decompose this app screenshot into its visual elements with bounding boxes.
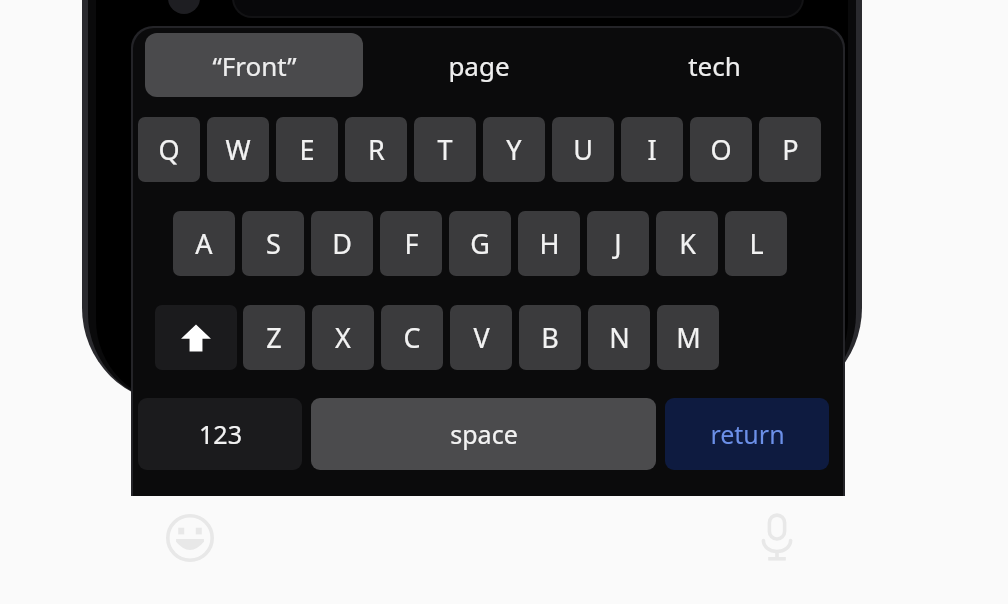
staticText: “Front” [212,48,297,83]
staticText: F [404,225,419,262]
button[interactable]: D [311,211,373,276]
staticText: B [541,319,559,356]
staticText: K [679,225,696,262]
button[interactable]: I [621,117,683,182]
button[interactable]: L [725,211,787,276]
button[interactable]: Emoji keyboard [166,514,214,562]
button[interactable]: 123 [138,398,302,470]
button[interactable]: U [552,117,614,182]
staticText: I [647,131,657,168]
staticText: T [437,131,453,168]
button[interactable]: E [276,117,338,182]
button[interactable]: A [173,211,235,276]
staticText: S [266,225,281,262]
staticText: Y [506,131,522,168]
staticText: page [448,48,510,83]
button[interactable]: G [449,211,511,276]
staticText: P [782,131,799,168]
staticText: 123 [199,417,242,451]
button[interactable]: Voice input [757,512,797,564]
staticText: W [225,131,251,168]
button[interactable]: W [207,117,269,182]
button[interactable]: return [665,398,829,470]
staticText: tech [688,48,741,83]
button[interactable]: F [380,211,442,276]
button[interactable]: Q [138,117,200,182]
staticText: Q [158,131,180,168]
button[interactable]: R [345,117,407,182]
button[interactable]: X [312,305,374,370]
staticText: space [450,417,518,451]
staticText: M [676,319,701,356]
staticText: L [749,225,764,262]
button[interactable]: space [311,398,656,470]
staticText: D [332,225,352,262]
staticText: H [539,225,560,262]
button[interactable]: Shift [155,305,237,370]
staticText: N [609,319,630,356]
button[interactable]: page [393,33,565,97]
button[interactable]: M [657,305,719,370]
button[interactable]: C [381,305,443,370]
staticText: V [473,319,490,356]
staticText: J [614,225,622,262]
staticText: O [710,131,732,168]
staticText: G [470,225,490,262]
button[interactable]: P [759,117,821,182]
staticText: U [573,131,593,168]
button[interactable]: Attach [168,0,200,14]
staticText: E [299,131,315,168]
button[interactable]: “Front” [145,33,363,97]
button[interactable]: T [414,117,476,182]
button[interactable]: Y [483,117,545,182]
button[interactable]: K [656,211,718,276]
button[interactable]: tech [630,33,798,97]
staticText: Z [266,319,282,356]
button[interactable]: B [519,305,581,370]
staticText: R [368,131,385,168]
staticText: X [335,319,351,356]
button[interactable]: O [690,117,752,182]
button[interactable]: S [242,211,304,276]
staticText: C [403,319,421,356]
staticText: A [195,225,213,262]
button[interactable]: V [450,305,512,370]
button[interactable]: N [588,305,650,370]
button[interactable] [232,0,804,18]
staticText: return [710,417,785,451]
button[interactable]: J [587,211,649,276]
button[interactable]: Z [243,305,305,370]
button[interactable]: H [518,211,580,276]
